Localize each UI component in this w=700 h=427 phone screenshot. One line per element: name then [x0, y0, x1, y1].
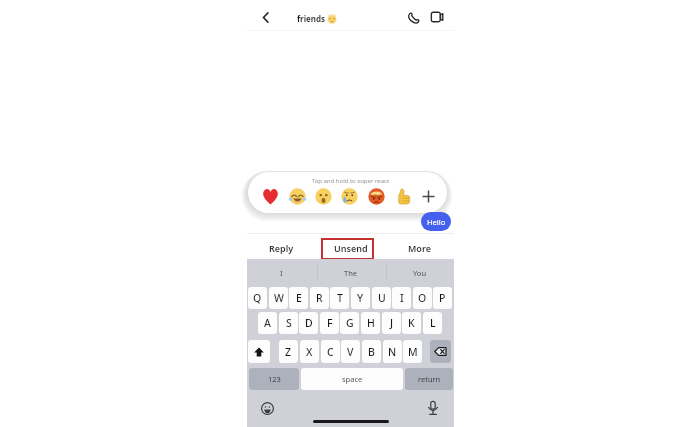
button[interactable]: Shift — [248, 340, 270, 363]
button[interactable]: You — [385, 259, 454, 286]
staticText: T — [337, 291, 343, 305]
staticText: G — [346, 316, 354, 330]
button[interactable]: N — [383, 340, 402, 363]
button[interactable]: Unsend — [316, 237, 385, 259]
staticText: X — [306, 345, 313, 359]
button[interactable]: React — [394, 188, 411, 205]
staticText: friends — [297, 13, 326, 24]
staticText: I — [400, 291, 404, 305]
button[interactable]: I — [247, 259, 316, 286]
staticText: The — [344, 268, 358, 278]
button[interactable]: W — [269, 287, 288, 309]
button[interactable]: O — [413, 287, 432, 309]
button[interactable]: Video call — [426, 6, 448, 28]
button[interactable]: Reply — [247, 237, 316, 259]
button[interactable]: Back — [254, 6, 276, 28]
button[interactable]: Y — [351, 287, 370, 309]
staticText: B — [368, 345, 375, 359]
button[interactable]: G — [340, 312, 359, 334]
staticText: space — [342, 374, 363, 384]
button[interactable]: B — [362, 340, 381, 363]
button[interactable]: React — [289, 188, 306, 205]
button[interactable]: D — [299, 312, 318, 334]
staticText: M — [408, 345, 418, 359]
button[interactable]: Backspace — [430, 340, 451, 363]
button[interactable]: 123 — [249, 368, 299, 390]
button[interactable]: C — [321, 340, 340, 363]
button[interactable]: X — [300, 340, 319, 363]
staticText: R — [316, 291, 323, 305]
button[interactable]: React — [315, 188, 332, 205]
button[interactable]: React — [368, 188, 385, 205]
button[interactable]: React — [262, 188, 279, 205]
button[interactable]: F — [320, 312, 339, 334]
staticText: J — [390, 316, 394, 330]
staticText: 123 — [268, 374, 281, 384]
staticText: Hello — [427, 217, 446, 227]
button[interactable]: More — [385, 237, 454, 259]
button[interactable]: The — [316, 259, 385, 286]
staticText: U — [378, 291, 386, 305]
staticText: return — [418, 374, 441, 384]
staticText: I — [280, 268, 283, 278]
staticText: N — [388, 345, 397, 359]
button[interactable]: Q — [248, 287, 267, 309]
button[interactable]: React — [422, 190, 435, 203]
staticText: S — [286, 316, 292, 330]
button[interactable]: A — [258, 312, 277, 334]
staticText: Z — [285, 345, 292, 359]
staticText: Reply — [269, 242, 294, 254]
staticText: A — [264, 316, 271, 330]
staticText: Y — [357, 291, 364, 305]
button[interactable]: K — [402, 312, 421, 334]
staticText: E — [296, 291, 302, 305]
button[interactable]: Hello — [421, 212, 451, 231]
button[interactable]: S — [279, 312, 298, 334]
button[interactable]: Z — [279, 340, 298, 363]
button[interactable]: React — [341, 188, 358, 205]
button[interactable]: Audio call — [402, 6, 424, 28]
button[interactable]: R — [310, 287, 329, 309]
staticText: V — [347, 345, 354, 359]
staticText: C — [327, 345, 334, 359]
button[interactable]: T — [330, 287, 349, 309]
staticText: P — [439, 291, 446, 305]
button[interactable]: V — [341, 340, 360, 363]
button[interactable]: L — [423, 312, 442, 334]
button[interactable]: return — [405, 368, 453, 390]
staticText: L — [430, 316, 436, 330]
button[interactable]: I — [392, 287, 411, 309]
button[interactable]: Dictation — [424, 399, 442, 417]
button[interactable]: M — [403, 340, 422, 363]
button[interactable]: Emoji keyboard — [258, 399, 276, 417]
staticText: Q — [253, 291, 262, 305]
staticText: F — [327, 316, 333, 330]
button[interactable]: E — [289, 287, 308, 309]
button[interactable]: P — [433, 287, 452, 309]
staticText: W — [274, 291, 284, 305]
button[interactable]: J — [382, 312, 401, 334]
button[interactable]: U — [372, 287, 391, 309]
button[interactable]: H — [361, 312, 380, 334]
staticText: You — [413, 268, 427, 278]
staticText: O — [418, 291, 427, 305]
staticText: Unsend — [334, 242, 368, 254]
staticText: K — [408, 316, 415, 330]
button[interactable]: space — [301, 368, 403, 390]
staticText: H — [367, 316, 375, 330]
staticText: Tap and hold to super react — [312, 177, 390, 185]
staticText: More — [408, 242, 431, 254]
staticText: D — [305, 316, 313, 330]
